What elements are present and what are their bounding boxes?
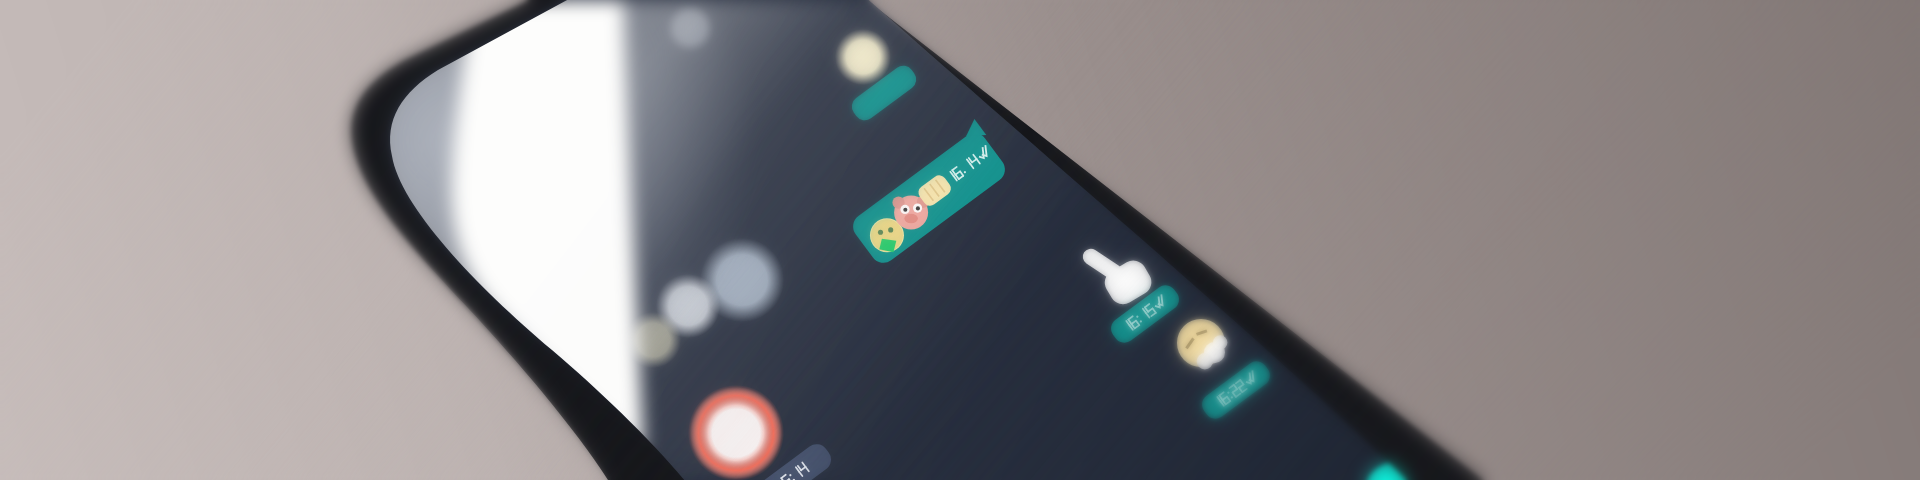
button[interactable]: Phone showing a chat conversation [0,0,1920,480]
